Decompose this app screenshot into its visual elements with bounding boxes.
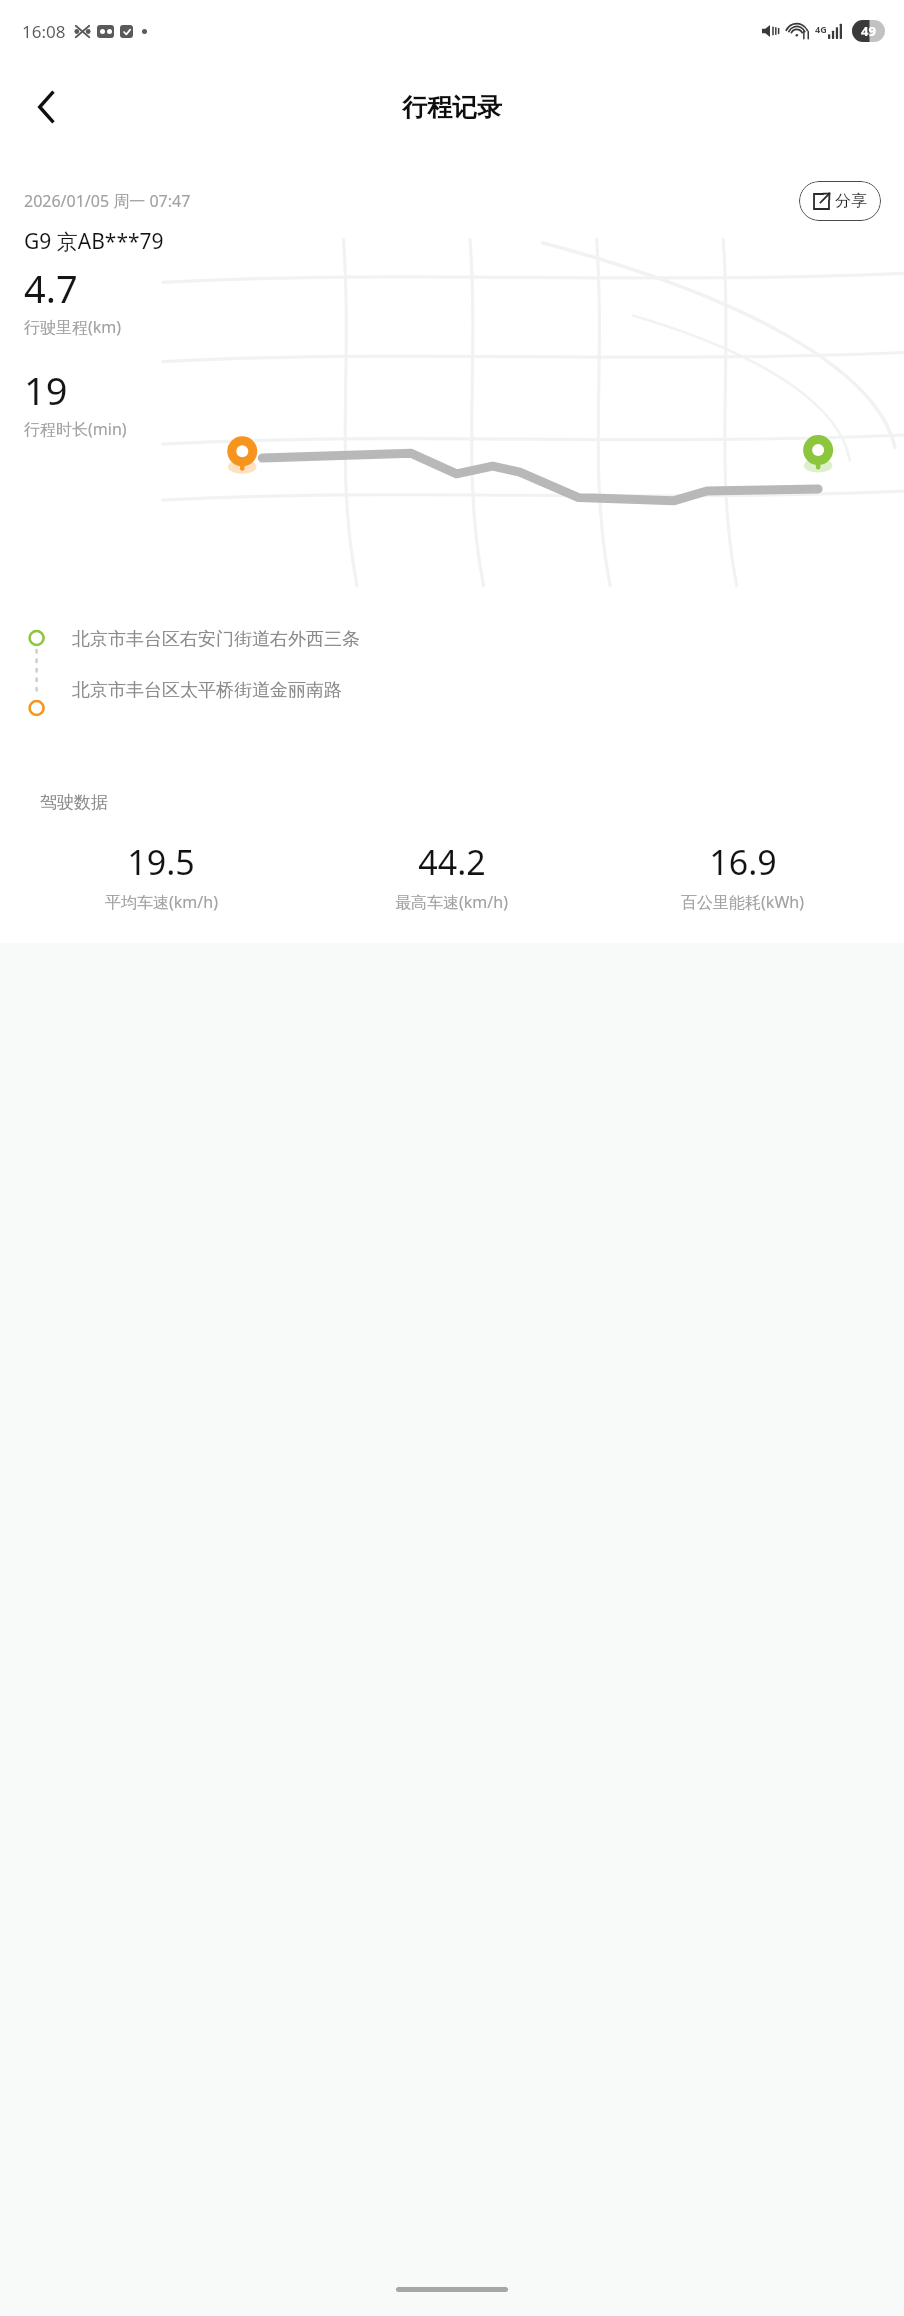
staticText: 16.9 bbox=[709, 839, 777, 885]
staticText: 行驶里程(km) bbox=[24, 316, 122, 338]
staticText: 行程记录 bbox=[402, 92, 502, 123]
staticText: 驾驶数据 bbox=[40, 792, 108, 813]
button[interactable]: 驾驶数据 bbox=[16, 770, 888, 943]
staticText: 4.7 bbox=[24, 262, 78, 314]
staticText: 百公里能耗(kWh) bbox=[681, 891, 804, 913]
staticText: 北京市丰台区右安门街道右外西三条 bbox=[72, 628, 360, 651]
staticText: 北京市丰台区太平桥街道金丽南路 bbox=[72, 679, 342, 702]
staticText: 44.2 bbox=[418, 839, 486, 885]
staticText: 平均车速(km/h) bbox=[105, 891, 218, 913]
staticText: 19 bbox=[24, 364, 68, 416]
staticText: 4G bbox=[815, 23, 827, 35]
staticText: 2026/01/05 周一 07:47 bbox=[24, 190, 191, 212]
staticText: 49 bbox=[861, 22, 876, 40]
button[interactable]: 分享 bbox=[799, 181, 881, 221]
staticText: 分享 bbox=[835, 191, 867, 211]
button[interactable]: Back bbox=[18, 79, 74, 135]
staticText: 最高车速(km/h) bbox=[395, 891, 508, 913]
staticText: 16:08 bbox=[22, 20, 66, 43]
staticText: 19.5 bbox=[127, 839, 195, 885]
staticText: G9 京AB***79 bbox=[24, 227, 164, 256]
staticText: 行程时长(min) bbox=[24, 418, 127, 440]
